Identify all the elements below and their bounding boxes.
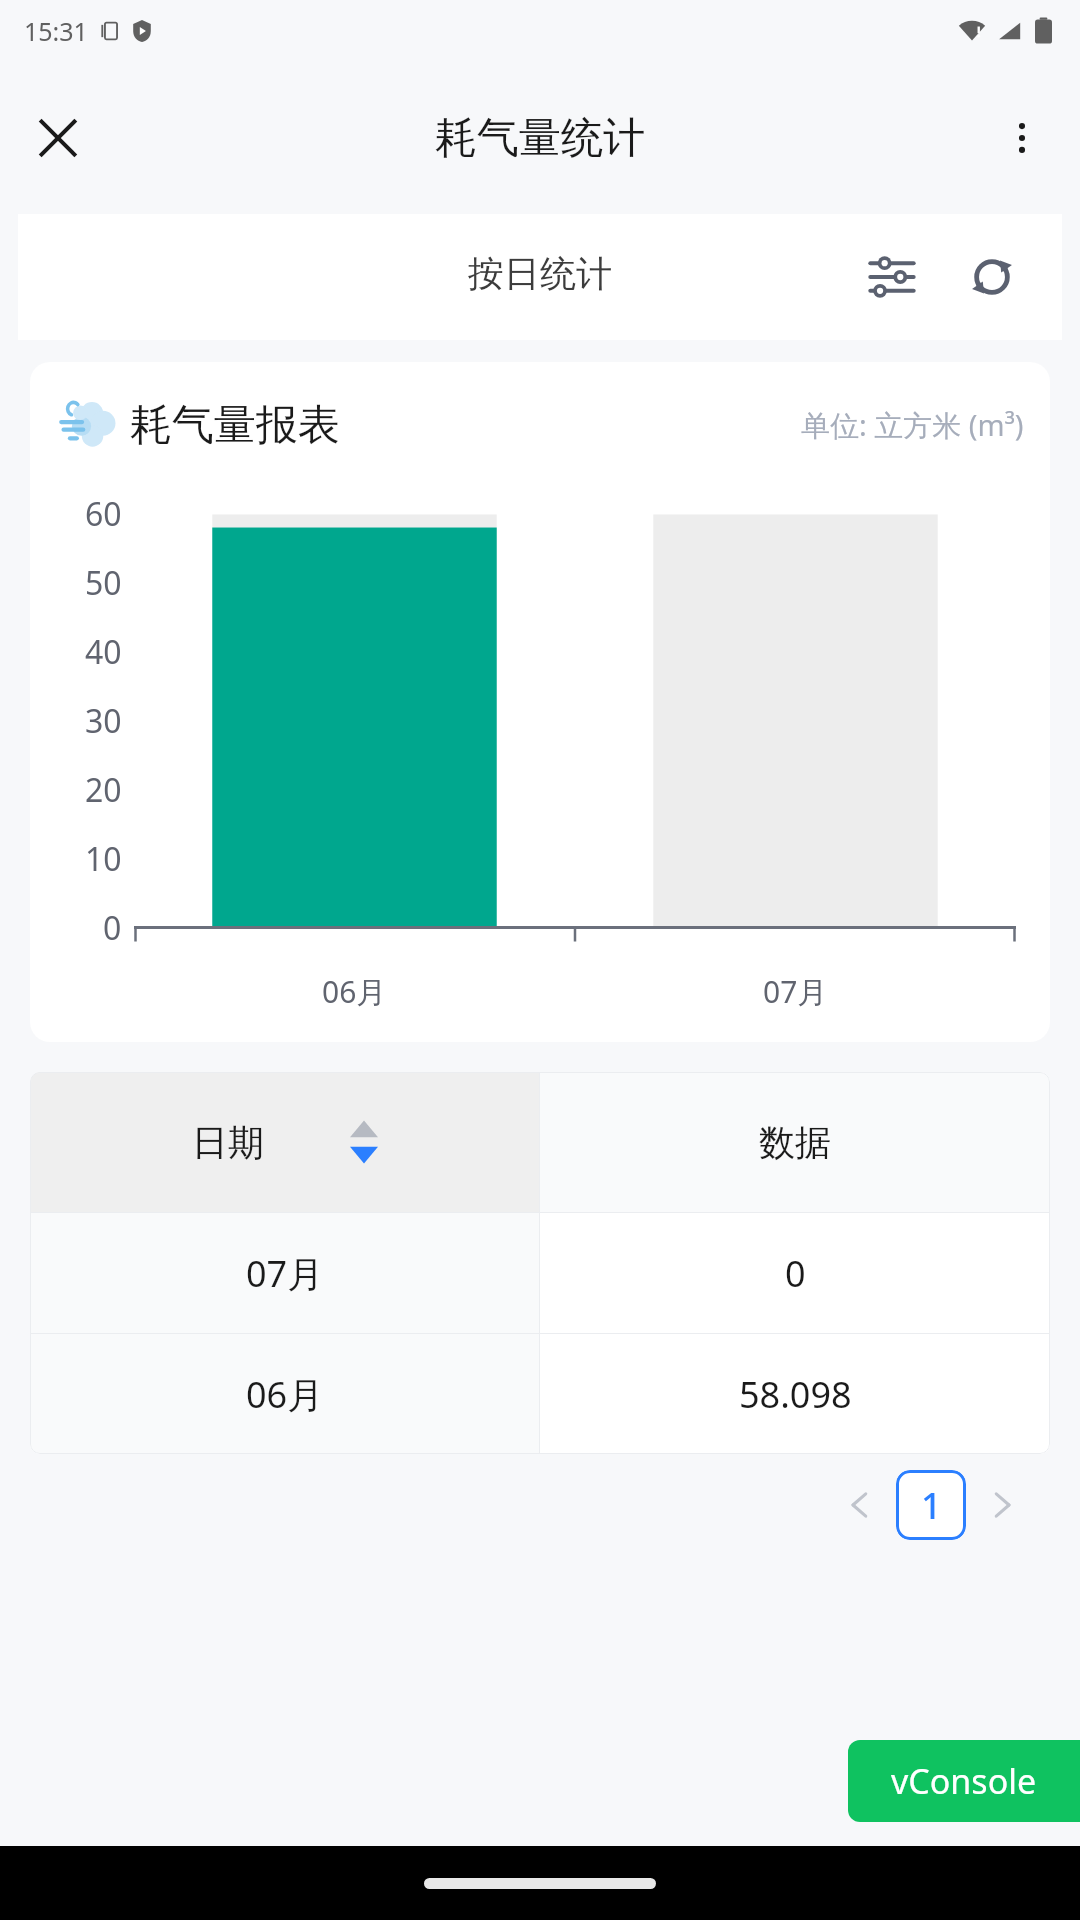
staticText: 单位: 立方米 (m³) (801, 405, 1024, 445)
staticText: 07月 (763, 971, 828, 1012)
staticText: 数据 (759, 1120, 831, 1165)
button[interactable]: More options (984, 100, 1060, 176)
button[interactable]: 06月 (30, 1334, 1050, 1454)
button[interactable]: 日期 (30, 1072, 539, 1212)
staticText: 06月 (246, 1370, 324, 1419)
staticText: 40 (85, 630, 122, 674)
button[interactable]: Next page (968, 1471, 1036, 1539)
button[interactable]: Filter (856, 241, 928, 313)
button[interactable]: 数据 (540, 1072, 1050, 1212)
staticText: 0 (103, 906, 122, 950)
staticText: 06月 (322, 971, 387, 1012)
staticText: 60 (85, 492, 122, 536)
button[interactable]: 07月 (30, 1213, 1050, 1333)
button[interactable]: Refresh (956, 241, 1028, 313)
button[interactable]: Previous page (826, 1471, 894, 1539)
staticText: vConsole (891, 1758, 1037, 1804)
staticText: 1 (921, 1481, 942, 1530)
staticText: 15:31 (24, 14, 88, 48)
staticText: 30 (85, 699, 122, 743)
button[interactable]: 1 (896, 1470, 966, 1540)
staticText: 10 (85, 837, 122, 881)
staticText: 日期 (192, 1120, 264, 1165)
staticText: 耗气量统计 (435, 112, 645, 165)
staticText: 耗气量报表 (130, 399, 340, 452)
staticText: 07月 (246, 1249, 324, 1298)
staticText: 按日统计 (468, 251, 612, 296)
staticText: 58.098 (739, 1370, 852, 1419)
staticText: 20 (85, 768, 122, 812)
staticText: 50 (85, 561, 122, 605)
button[interactable]: 按日统计 (18, 214, 1062, 340)
staticText: 0 (785, 1249, 806, 1298)
button[interactable]: vConsole (848, 1740, 1080, 1822)
button[interactable]: Close (20, 100, 96, 176)
